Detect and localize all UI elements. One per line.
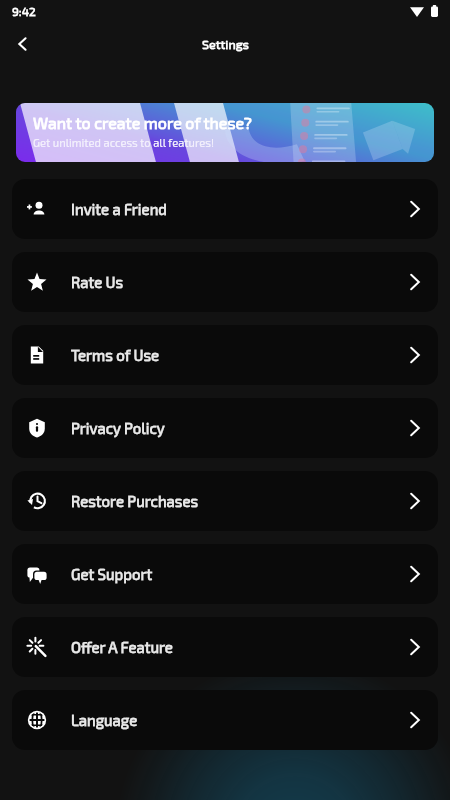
- staticText: Terms of Use: [71, 346, 160, 364]
- staticText: Offer A Feature: [71, 638, 173, 656]
- button[interactable]: Privacy Policy: [12, 398, 438, 458]
- staticText: 9:42: [12, 4, 36, 18]
- staticText: Language: [71, 711, 138, 729]
- button[interactable]: Restore Purchases: [12, 471, 438, 531]
- button[interactable]: Offer A Feature: [12, 617, 438, 677]
- staticText: Restore Purchases: [71, 492, 199, 510]
- button[interactable]: Back: [7, 28, 39, 60]
- button[interactable]: Get Support: [12, 544, 438, 604]
- button[interactable]: Rate Us: [12, 252, 438, 312]
- staticText: Invite a Friend: [71, 200, 167, 218]
- button[interactable]: Language: [12, 690, 438, 750]
- staticText: Get unlimited access to all features!: [33, 136, 215, 149]
- staticText: Want to create more of these?: [33, 113, 252, 132]
- staticText: Settings: [202, 37, 249, 52]
- button[interactable]: Invite a Friend: [12, 179, 438, 239]
- staticText: Privacy Policy: [71, 419, 165, 437]
- button[interactable]: Terms of Use: [12, 325, 438, 385]
- staticText: Rate Us: [71, 273, 124, 291]
- button[interactable]: Want to create more of these?: [16, 103, 434, 162]
- staticText: Get Support: [71, 565, 153, 583]
